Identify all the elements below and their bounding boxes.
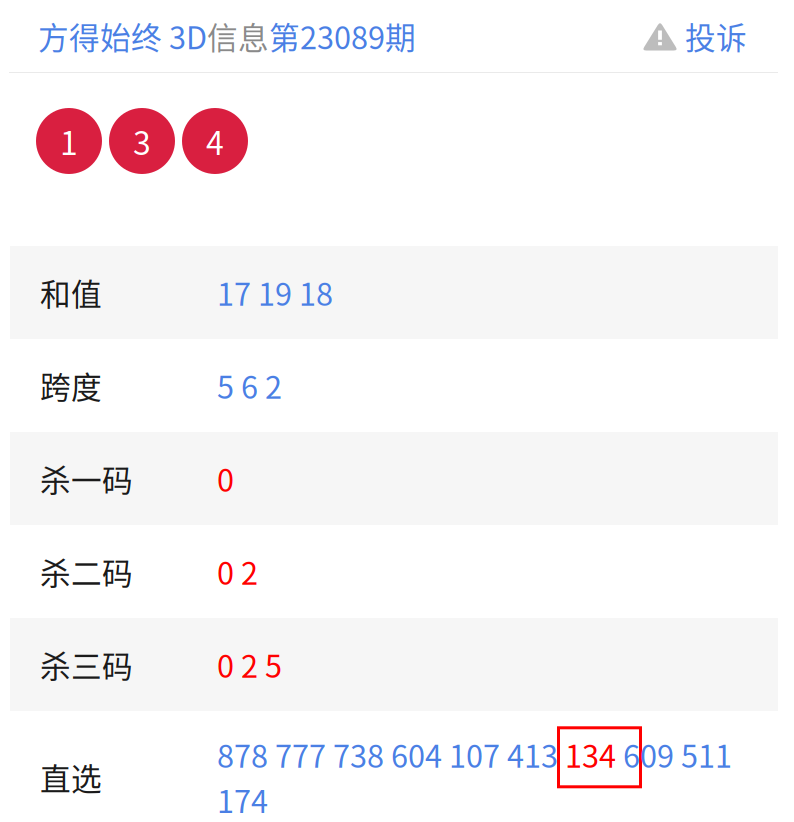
staticText: 直选 — [40, 755, 102, 799]
staticText: 609 511 — [616, 732, 732, 776]
staticText: 跨度 — [40, 363, 102, 408]
staticText: 0 2 5 — [217, 642, 282, 687]
staticText: 杀一码 — [40, 456, 133, 501]
staticText: 信息 — [207, 14, 269, 58]
staticText: 杀三码 — [40, 642, 133, 687]
staticText: 134 — [565, 732, 616, 776]
staticText: 878 777 738 604 107 413 — [217, 732, 565, 776]
staticText: 0 2 — [217, 549, 258, 594]
staticText: 投诉 — [685, 14, 747, 58]
staticText: 4 — [206, 118, 224, 164]
button[interactable]: 投诉 — [642, 14, 747, 58]
staticText: 1 — [60, 118, 78, 164]
staticText: 5 6 2 — [217, 363, 282, 408]
staticText: 0 — [217, 456, 234, 501]
staticText: 方得始终 3D — [38, 14, 207, 58]
staticText: 174 — [217, 777, 268, 822]
staticText: 杀二码 — [40, 549, 133, 594]
staticText: 第23089期 — [269, 14, 416, 58]
staticText: 和值 — [40, 270, 102, 315]
staticText: 17 19 18 — [217, 270, 333, 315]
staticText: 3 — [133, 118, 151, 164]
